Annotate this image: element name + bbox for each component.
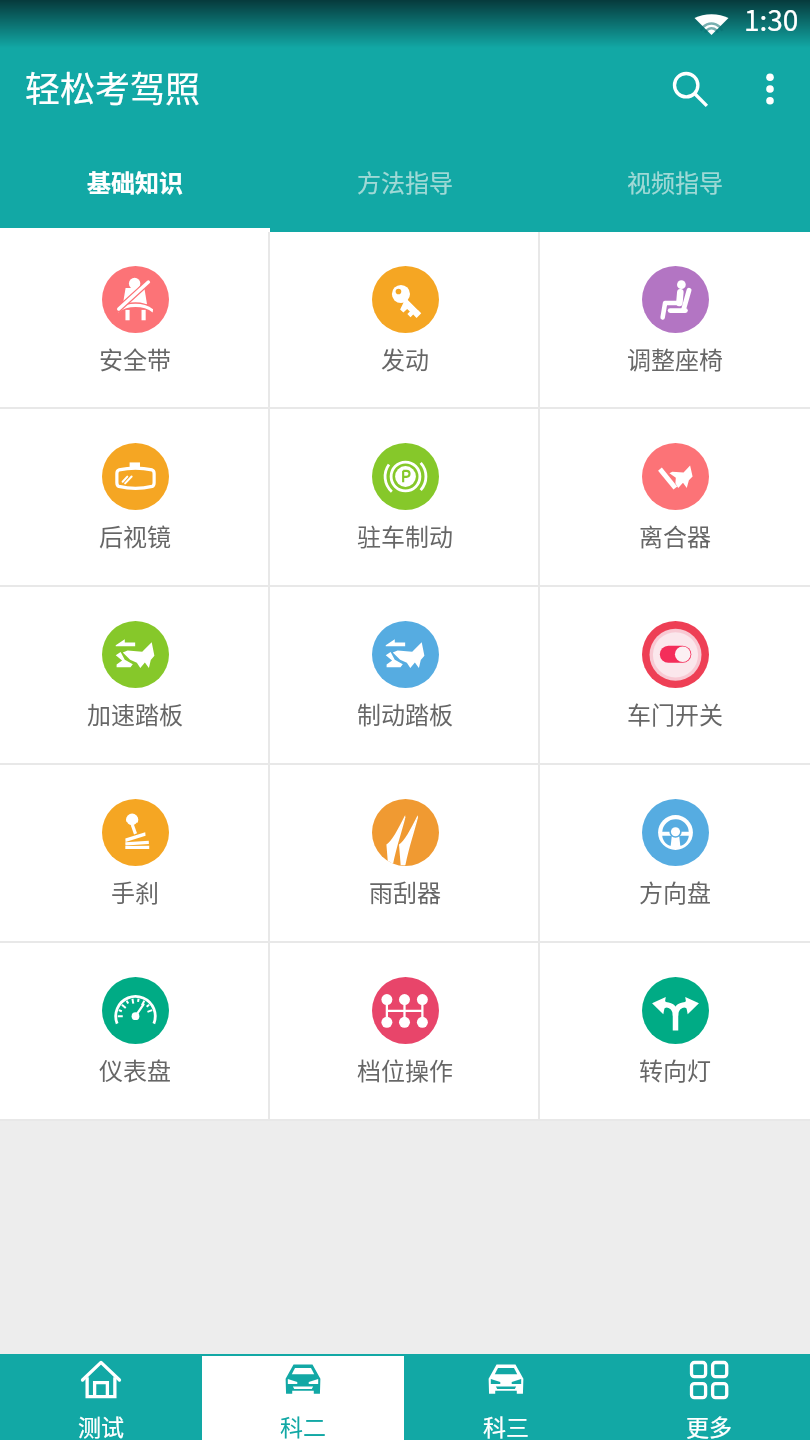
staticText: 雨刮器 [369, 874, 441, 909]
button[interactable]: 方向盘 [540, 765, 810, 941]
staticText: 转向灯 [639, 1052, 711, 1087]
staticText: 方法指导 [357, 164, 453, 199]
button[interactable]: 制动踏板 [270, 587, 540, 763]
button[interactable]: 仪表盘 [0, 943, 270, 1119]
button[interactable]: 视频指导 [540, 130, 810, 232]
button[interactable]: 发动 [270, 232, 540, 407]
staticText: 手刹 [111, 874, 159, 909]
button[interactable]: 更多 [607, 1356, 810, 1440]
staticText: 安全带 [99, 341, 171, 376]
button[interactable]: 驻车制动 [270, 409, 540, 585]
button[interactable]: 转向灯 [540, 943, 810, 1119]
button[interactable]: 方法指导 [270, 130, 540, 232]
button[interactable]: 调整座椅 [540, 232, 810, 407]
staticText: 轻松考驾照 [25, 61, 201, 112]
staticText: 科二 [280, 1409, 326, 1440]
button[interactable]: 加速踏板 [0, 587, 270, 763]
button[interactable]: 测试 [0, 1356, 202, 1440]
staticText: 仪表盘 [99, 1052, 171, 1087]
button[interactable]: 雨刮器 [270, 765, 540, 941]
staticText: 更多 [686, 1409, 732, 1440]
staticText: 车门开关 [627, 696, 723, 731]
button[interactable]: 科二 [202, 1356, 404, 1440]
staticText: 1:30 [744, 0, 799, 40]
staticText: 档位操作 [357, 1052, 453, 1087]
staticText: 科三 [483, 1409, 529, 1440]
staticText: 后视镜 [99, 518, 171, 553]
staticText: 驻车制动 [357, 518, 453, 553]
staticText: 测试 [78, 1409, 124, 1440]
button[interactable]: 手刹 [0, 765, 270, 941]
staticText: 方向盘 [639, 874, 711, 909]
button[interactable]: 安全带 [0, 232, 270, 407]
staticText: 基础知识 [87, 164, 183, 199]
button[interactable]: More options [730, 49, 810, 129]
button[interactable]: Search [650, 49, 730, 129]
button[interactable]: 离合器 [540, 409, 810, 585]
staticText: 制动踏板 [357, 696, 453, 731]
button[interactable]: 后视镜 [0, 409, 270, 585]
staticText: 视频指导 [627, 164, 723, 199]
staticText: 加速踏板 [87, 696, 183, 731]
staticText: 发动 [381, 341, 429, 376]
button[interactable]: 车门开关 [540, 587, 810, 763]
button[interactable]: 档位操作 [270, 943, 540, 1119]
button[interactable]: 科三 [404, 1356, 607, 1440]
staticText: 离合器 [639, 518, 711, 553]
button[interactable]: 基础知识 [0, 130, 270, 232]
staticText: 调整座椅 [627, 341, 723, 376]
